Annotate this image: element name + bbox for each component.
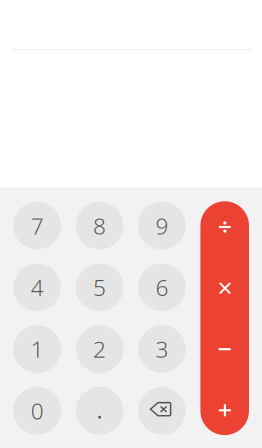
button[interactable]: 8 [76, 202, 123, 249]
button[interactable]: Multiply [201, 264, 249, 312]
button[interactable]: 3 [138, 325, 186, 373]
button[interactable]: Decimal point [76, 387, 123, 435]
button[interactable]: 5 [76, 263, 123, 311]
button[interactable]: 0 [13, 387, 61, 435]
button[interactable]: 7 [13, 202, 61, 249]
button[interactable]: Minus [201, 325, 248, 373]
button[interactable]: 2 [76, 325, 123, 373]
staticText: 2 [93, 334, 106, 364]
staticText: 0 [31, 396, 44, 426]
staticText: 7 [31, 210, 44, 241]
button[interactable]: 9 [138, 202, 186, 249]
button[interactable]: Divide [201, 203, 249, 251]
button[interactable]: 4 [13, 263, 61, 311]
staticText: 3 [155, 334, 168, 364]
button[interactable]: Plus [201, 386, 249, 434]
staticText: 4 [31, 272, 44, 302]
staticText: 8 [93, 210, 106, 241]
staticText: 9 [155, 210, 168, 241]
button[interactable]: 6 [138, 263, 186, 311]
button[interactable]: 1 [13, 325, 61, 373]
button[interactable]: Delete [138, 387, 186, 435]
staticText: 6 [155, 272, 168, 302]
staticText: 1 [31, 334, 44, 364]
staticText: 5 [93, 272, 106, 302]
